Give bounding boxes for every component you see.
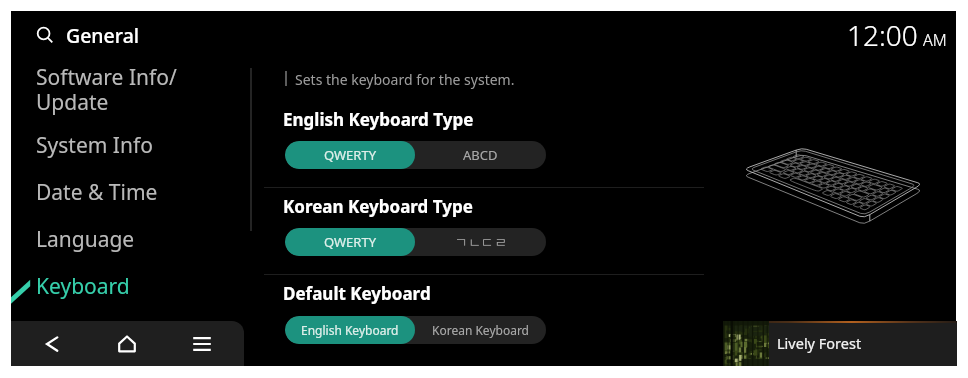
button[interactable]: ㄱㄴㄷㄹ: [415, 228, 546, 256]
button[interactable]: Keyboard: [11, 276, 245, 323]
button[interactable]: Home: [101, 321, 153, 366]
staticText: Default Keyboard: [283, 282, 431, 305]
button[interactable]: Software Info/ Update: [11, 67, 245, 137]
staticText: 12:00: [847, 16, 918, 54]
staticText: English Keyboard Type: [283, 108, 474, 131]
staticText: Software Info/ Update: [36, 63, 177, 116]
button[interactable]: Korean Keyboard: [415, 316, 546, 344]
staticText: Korean Keyboard: [432, 322, 529, 338]
button[interactable]: System Info: [11, 135, 245, 182]
button[interactable]: Date & Time: [11, 182, 245, 229]
staticText: Language: [36, 225, 135, 254]
staticText: System Info: [36, 131, 153, 160]
button[interactable]: Menu: [176, 321, 228, 366]
button[interactable]: QWERTY: [285, 141, 415, 169]
button[interactable]: Language: [11, 229, 245, 276]
button[interactable]: English Keyboard: [285, 316, 415, 344]
button[interactable]: Back: [26, 321, 78, 366]
staticText: General: [66, 22, 140, 49]
staticText: Sets the keyboard for the system.: [295, 70, 515, 89]
button[interactable]: Lively Forest: [723, 321, 957, 366]
staticText: English Keyboard: [301, 322, 399, 338]
staticText: ㄱㄴㄷㄹ: [455, 234, 507, 250]
staticText: Lively Forest: [777, 333, 862, 353]
button[interactable]: Search General: [11, 19, 245, 57]
staticText: Date & Time: [36, 178, 158, 207]
button[interactable]: ABCD: [415, 141, 546, 169]
button[interactable]: QWERTY: [285, 228, 415, 256]
staticText: Korean Keyboard Type: [283, 195, 473, 218]
staticText: QWERTY: [324, 146, 377, 164]
staticText: Keyboard: [36, 272, 130, 301]
staticText: QWERTY: [324, 233, 377, 251]
staticText: AM: [923, 29, 947, 51]
staticText: ABCD: [463, 146, 498, 164]
